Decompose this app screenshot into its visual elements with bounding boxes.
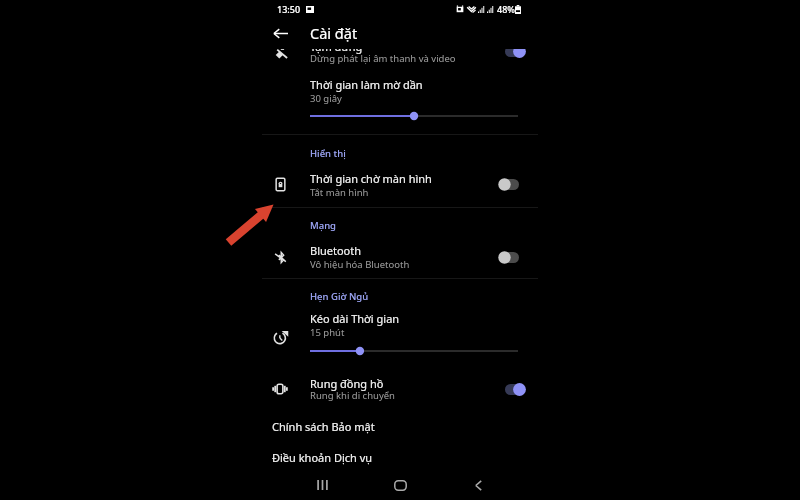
staticText: Chính sách Bảo mật — [272, 419, 375, 434]
staticText: Mạng — [310, 219, 337, 232]
staticText: Điều khoản Dịch vụ — [272, 450, 373, 465]
staticText: Thời gian làm mờ dần — [310, 77, 423, 92]
button[interactable]: Thời gian chờ màn hình — [262, 166, 538, 202]
staticText: Rung đồng hồ — [310, 376, 384, 391]
staticText: Bluetooth — [310, 243, 362, 258]
button[interactable]: Toggle off — [498, 178, 520, 191]
staticText: 30 giây — [310, 92, 342, 105]
staticText: Cài đặt — [310, 23, 358, 43]
staticText: Tắt màn hình — [310, 186, 369, 199]
staticText: Vô hiệu hóa Bluetooth — [310, 258, 410, 271]
staticText: Tạm dừng — [310, 39, 363, 54]
button[interactable]: Chính sách Bảo mật — [262, 412, 538, 440]
staticText: 15 phút — [310, 326, 345, 339]
button[interactable]: Bluetooth — [262, 239, 538, 274]
button[interactable]: Điều khoản Dịch vụ — [262, 443, 538, 471]
staticText: Hẹn Giờ Ngủ — [310, 290, 369, 303]
button[interactable]: Tạm dừng — [262, 40, 538, 70]
button[interactable]: Toggle on — [504, 45, 526, 58]
button[interactable]: Slider — [310, 344, 518, 358]
staticText: 13:50 — [277, 3, 301, 15]
staticText: Kéo dài Thời gian — [310, 311, 400, 326]
button[interactable]: Kéo dài Thời gian — [262, 308, 538, 364]
staticText: 48% — [497, 3, 515, 15]
button[interactable]: Thời gian làm mờ dần — [262, 72, 538, 128]
button[interactable]: Toggle on — [504, 383, 526, 396]
button[interactable]: Back — [466, 473, 490, 497]
staticText: Thời gian chờ màn hình — [310, 171, 432, 186]
button[interactable]: Toggle off — [498, 251, 520, 264]
button[interactable]: Slider — [310, 109, 518, 123]
button[interactable]: Recents — [310, 473, 334, 497]
button[interactable]: Back — [268, 21, 292, 45]
staticText: Hiển thị — [310, 147, 346, 160]
staticText: Dừng phát lại âm thanh và video — [310, 52, 456, 65]
button[interactable]: Rung đồng hồ — [262, 372, 538, 406]
staticText: Rung khi di chuyển — [310, 389, 395, 402]
button[interactable]: Home — [388, 473, 412, 497]
